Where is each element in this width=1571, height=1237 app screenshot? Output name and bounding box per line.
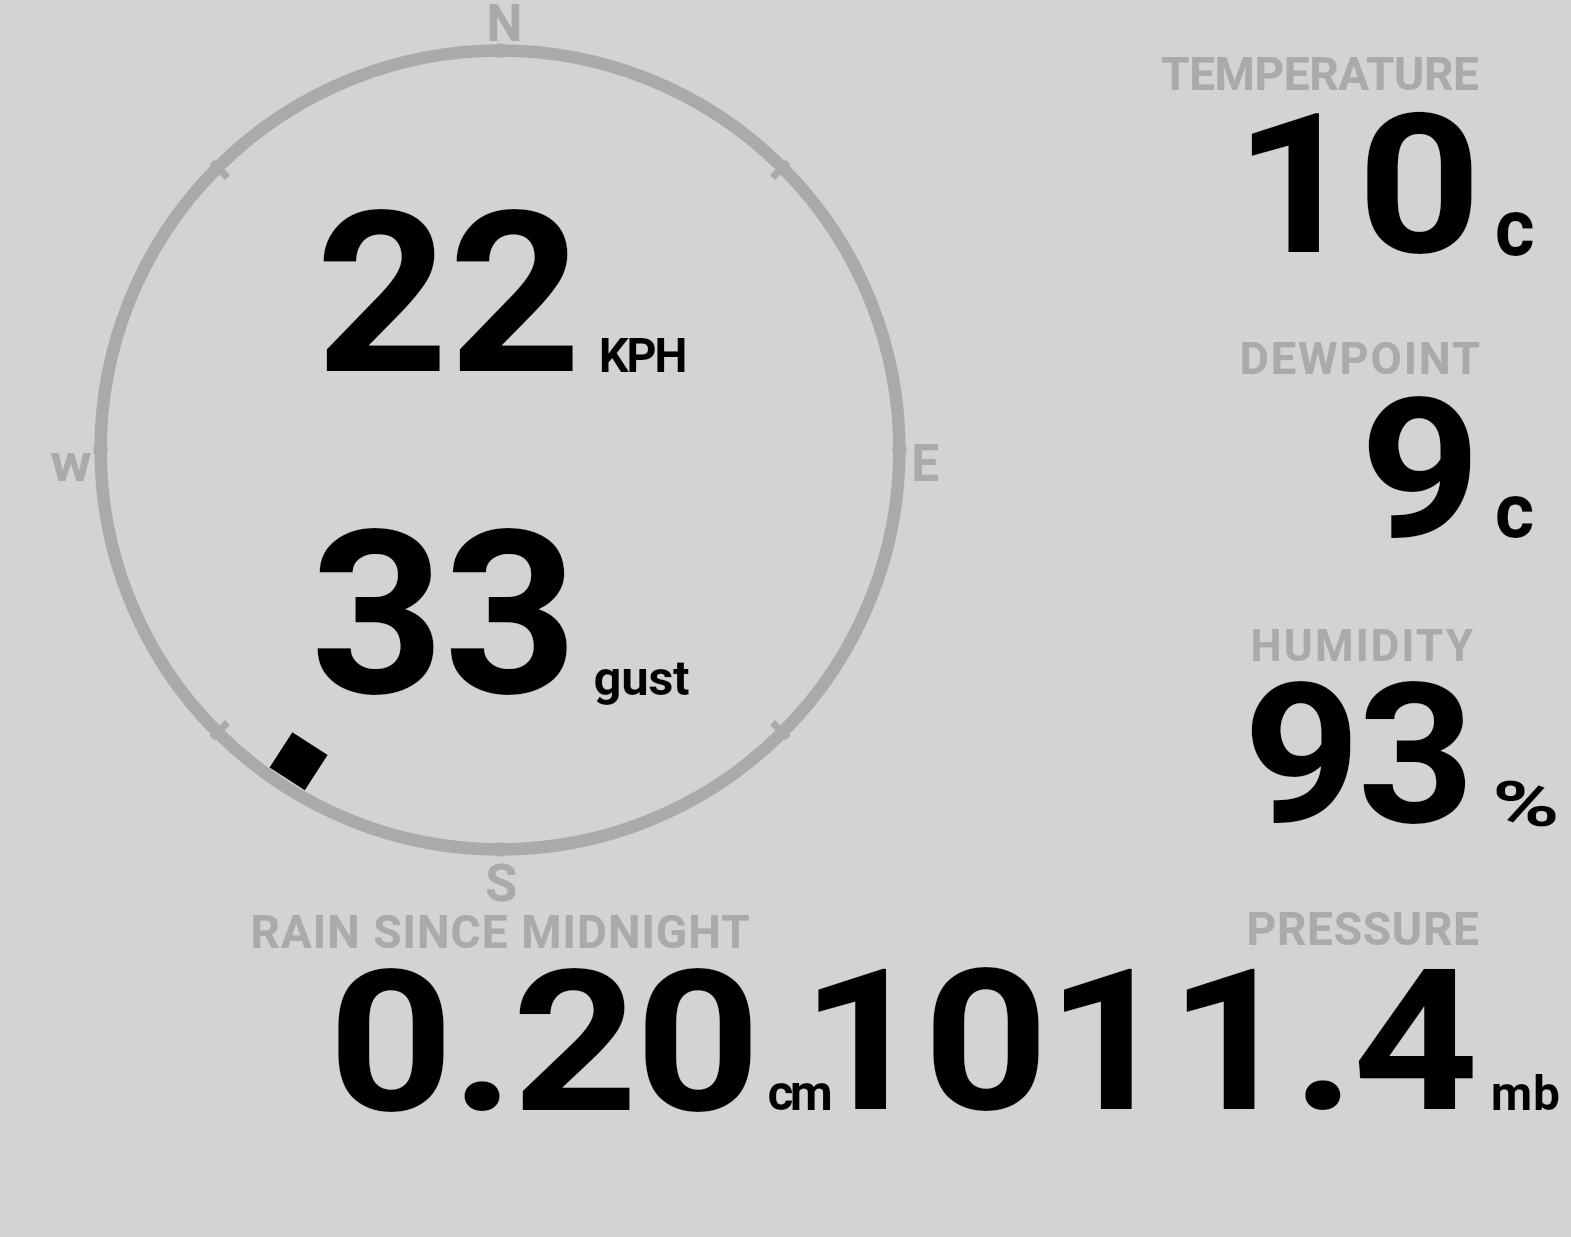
button[interactable]: Temperature 10 C	[1100, 40, 1571, 270]
button[interactable]: Humidity 93 percent	[1100, 610, 1571, 840]
button[interactable]: Dewpoint 9 C	[1100, 325, 1571, 550]
button[interactable]: Rain since midnight 0.20 cm	[240, 900, 840, 1120]
button[interactable]: Wind 22 KPH, gusting 33, direction south…	[85, 35, 915, 865]
button[interactable]: Pressure 1011.4 mb	[845, 900, 1565, 1120]
